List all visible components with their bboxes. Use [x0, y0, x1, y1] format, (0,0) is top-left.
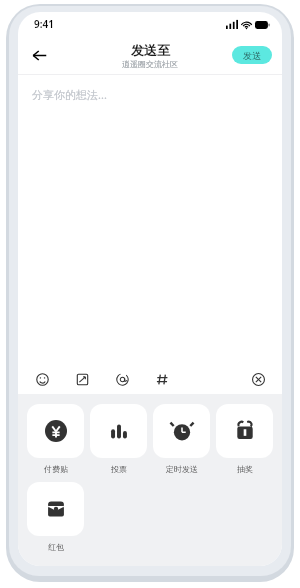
button[interactable]: 付费贴	[27, 404, 84, 474]
staticText: 逍遥圈交流社区	[122, 59, 178, 69]
staticText: 抽奖	[237, 464, 253, 474]
button[interactable]: Image	[72, 369, 92, 389]
button[interactable]: 抽奖	[216, 404, 273, 474]
button[interactable]: Mention	[112, 369, 132, 389]
button[interactable]: 定时发送	[153, 404, 210, 474]
button[interactable]: 投票	[90, 404, 147, 474]
button[interactable]: 红包	[27, 482, 84, 552]
button[interactable]: Emoji	[32, 369, 52, 389]
staticText: 9:41	[34, 17, 54, 31]
staticText: 发送	[243, 50, 261, 61]
staticText: 付费贴	[44, 464, 68, 474]
button[interactable]: Topic	[152, 369, 172, 389]
staticText: 发送至	[131, 42, 170, 58]
staticText: 红包	[48, 542, 64, 552]
staticText: 定时发送	[166, 464, 198, 474]
button[interactable]: Close	[248, 369, 268, 389]
staticText: 分享你的想法...	[32, 87, 107, 102]
staticText: 投票	[111, 464, 127, 474]
button[interactable]: 发送	[232, 46, 272, 64]
button[interactable]: Back	[24, 40, 54, 70]
